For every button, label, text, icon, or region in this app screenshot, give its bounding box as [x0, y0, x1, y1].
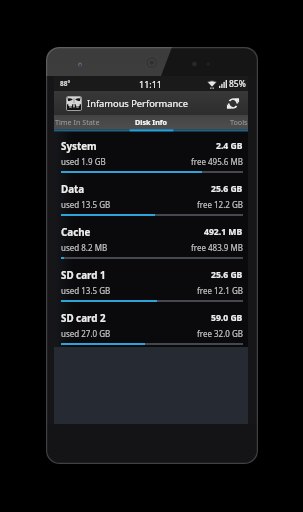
- button[interactable]: SD card 1: [54, 261, 248, 304]
- staticText: used 27.0 GB: [61, 328, 111, 339]
- staticText: System: [61, 140, 97, 153]
- staticText: free 32.0 GB: [197, 328, 243, 339]
- staticText: 492.1 MB: [204, 226, 243, 238]
- staticText: free 495.6 MB: [191, 156, 243, 167]
- button[interactable]: Time In State: [55, 117, 100, 127]
- staticText: free 483.9 MB: [191, 242, 243, 253]
- staticText: 88°: [60, 79, 71, 88]
- button[interactable]: System: [54, 132, 248, 175]
- staticText: free 12.2 GB: [197, 199, 243, 210]
- button[interactable]: Cache: [54, 218, 248, 261]
- staticText: used 1.9 GB: [61, 156, 106, 167]
- staticText: Infamous Performance: [87, 97, 188, 110]
- staticText: SD card 2: [61, 312, 106, 325]
- staticText: 11:11: [139, 78, 163, 90]
- staticText: 2.4 GB: [216, 140, 243, 152]
- staticText: 25.6 GB: [211, 269, 243, 281]
- staticText: used 13.5 GB: [61, 199, 111, 210]
- staticText: Cache: [61, 226, 91, 239]
- staticText: Data: [61, 183, 85, 196]
- staticText: 25.6 GB: [211, 183, 243, 195]
- button[interactable]: Data: [54, 175, 248, 218]
- staticText: free 12.1 GB: [197, 285, 243, 296]
- staticText: 59.0 GB: [211, 312, 243, 324]
- button[interactable]: Disk Info: [135, 117, 168, 127]
- staticText: used 8.2 MB: [61, 242, 108, 253]
- button[interactable]: Refresh: [227, 97, 239, 110]
- staticText: SD card 1: [61, 269, 106, 282]
- staticText: 85%: [229, 78, 246, 90]
- button[interactable]: SD card 2: [54, 304, 248, 347]
- staticText: used 13.5 GB: [61, 285, 111, 296]
- button[interactable]: Tools: [230, 117, 248, 127]
